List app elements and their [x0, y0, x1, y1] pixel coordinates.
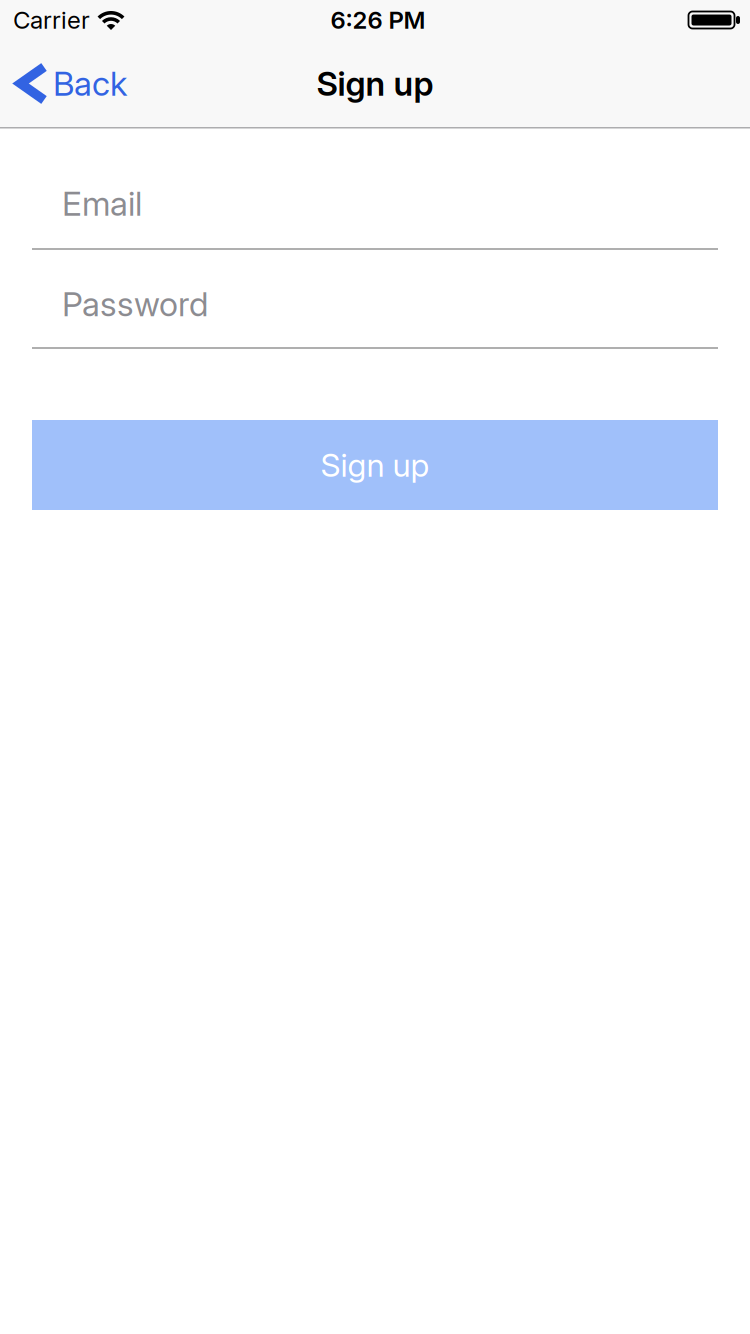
- staticText: Back: [53, 64, 127, 103]
- staticText: Sign up: [316, 64, 433, 103]
- staticText: Password: [62, 284, 208, 324]
- staticText: Email: [62, 184, 142, 223]
- staticText: Sign up: [320, 446, 429, 484]
- staticText: Carrier: [13, 6, 90, 34]
- button[interactable]: Email: [32, 183, 718, 250]
- staticText: 6:26 PM: [330, 6, 425, 34]
- button[interactable]: Password: [32, 250, 718, 349]
- button[interactable]: Sign up: [32, 420, 718, 510]
- button[interactable]: Back: [0, 62, 127, 104]
